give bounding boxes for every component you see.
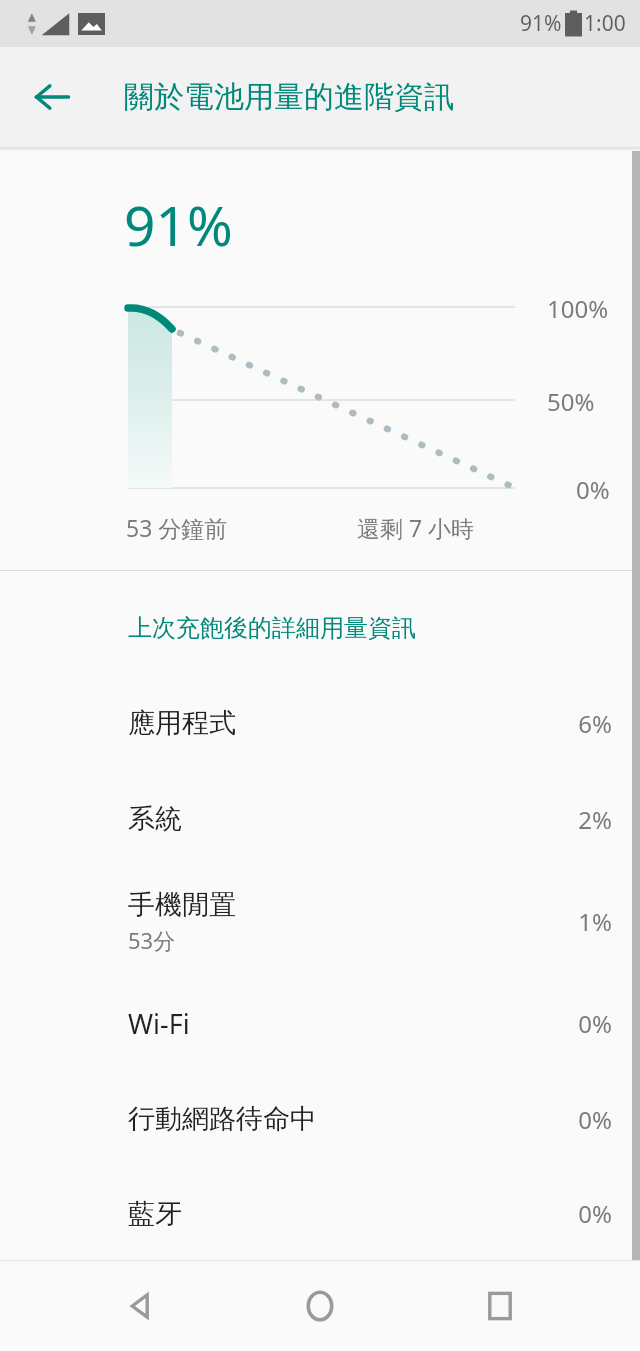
staticText: 手機閒置 [128, 888, 236, 922]
button[interactable]: 行動網路待命中 [0, 1071, 640, 1167]
button[interactable]: 應用程式 [0, 675, 640, 771]
staticText: 1% [578, 905, 612, 938]
staticText: 行動網路待命中 [128, 1102, 317, 1136]
staticText: 0% [576, 473, 610, 506]
button[interactable]: Recent apps [460, 1266, 540, 1346]
staticText: 應用程式 [128, 706, 236, 740]
button[interactable]: Home [280, 1266, 360, 1346]
staticText: 1:00 [584, 9, 626, 38]
staticText: 關於電池用量的進階資訊 [124, 78, 454, 116]
button[interactable]: 手機閒置 [0, 867, 640, 975]
staticText: 系統 [128, 802, 182, 836]
staticText: 53 分鐘前 [126, 512, 228, 543]
staticText: 2% [578, 803, 612, 836]
button[interactable]: Back [20, 65, 84, 129]
staticText: 還剩 7 小時 [357, 512, 475, 543]
button[interactable]: Wi-Fi [0, 975, 640, 1071]
button[interactable]: 系統 [0, 771, 640, 867]
button[interactable]: Back [100, 1266, 180, 1346]
staticText: 上次充飽後的詳細用量資訊 [128, 613, 416, 643]
staticText: 53分 [128, 925, 176, 955]
staticText: 91% [124, 187, 233, 262]
button[interactable]: 藍牙 [0, 1167, 640, 1260]
staticText: 100% [547, 292, 609, 325]
staticText: Wi-Fi [128, 1005, 190, 1042]
staticText: 0% [578, 1103, 612, 1136]
staticText: 藍牙 [128, 1197, 182, 1231]
staticText: 91% [520, 9, 562, 38]
staticText: 0% [578, 1007, 612, 1040]
staticText: 0% [578, 1197, 612, 1230]
staticText: 50% [547, 385, 595, 418]
staticText: 6% [578, 707, 612, 740]
